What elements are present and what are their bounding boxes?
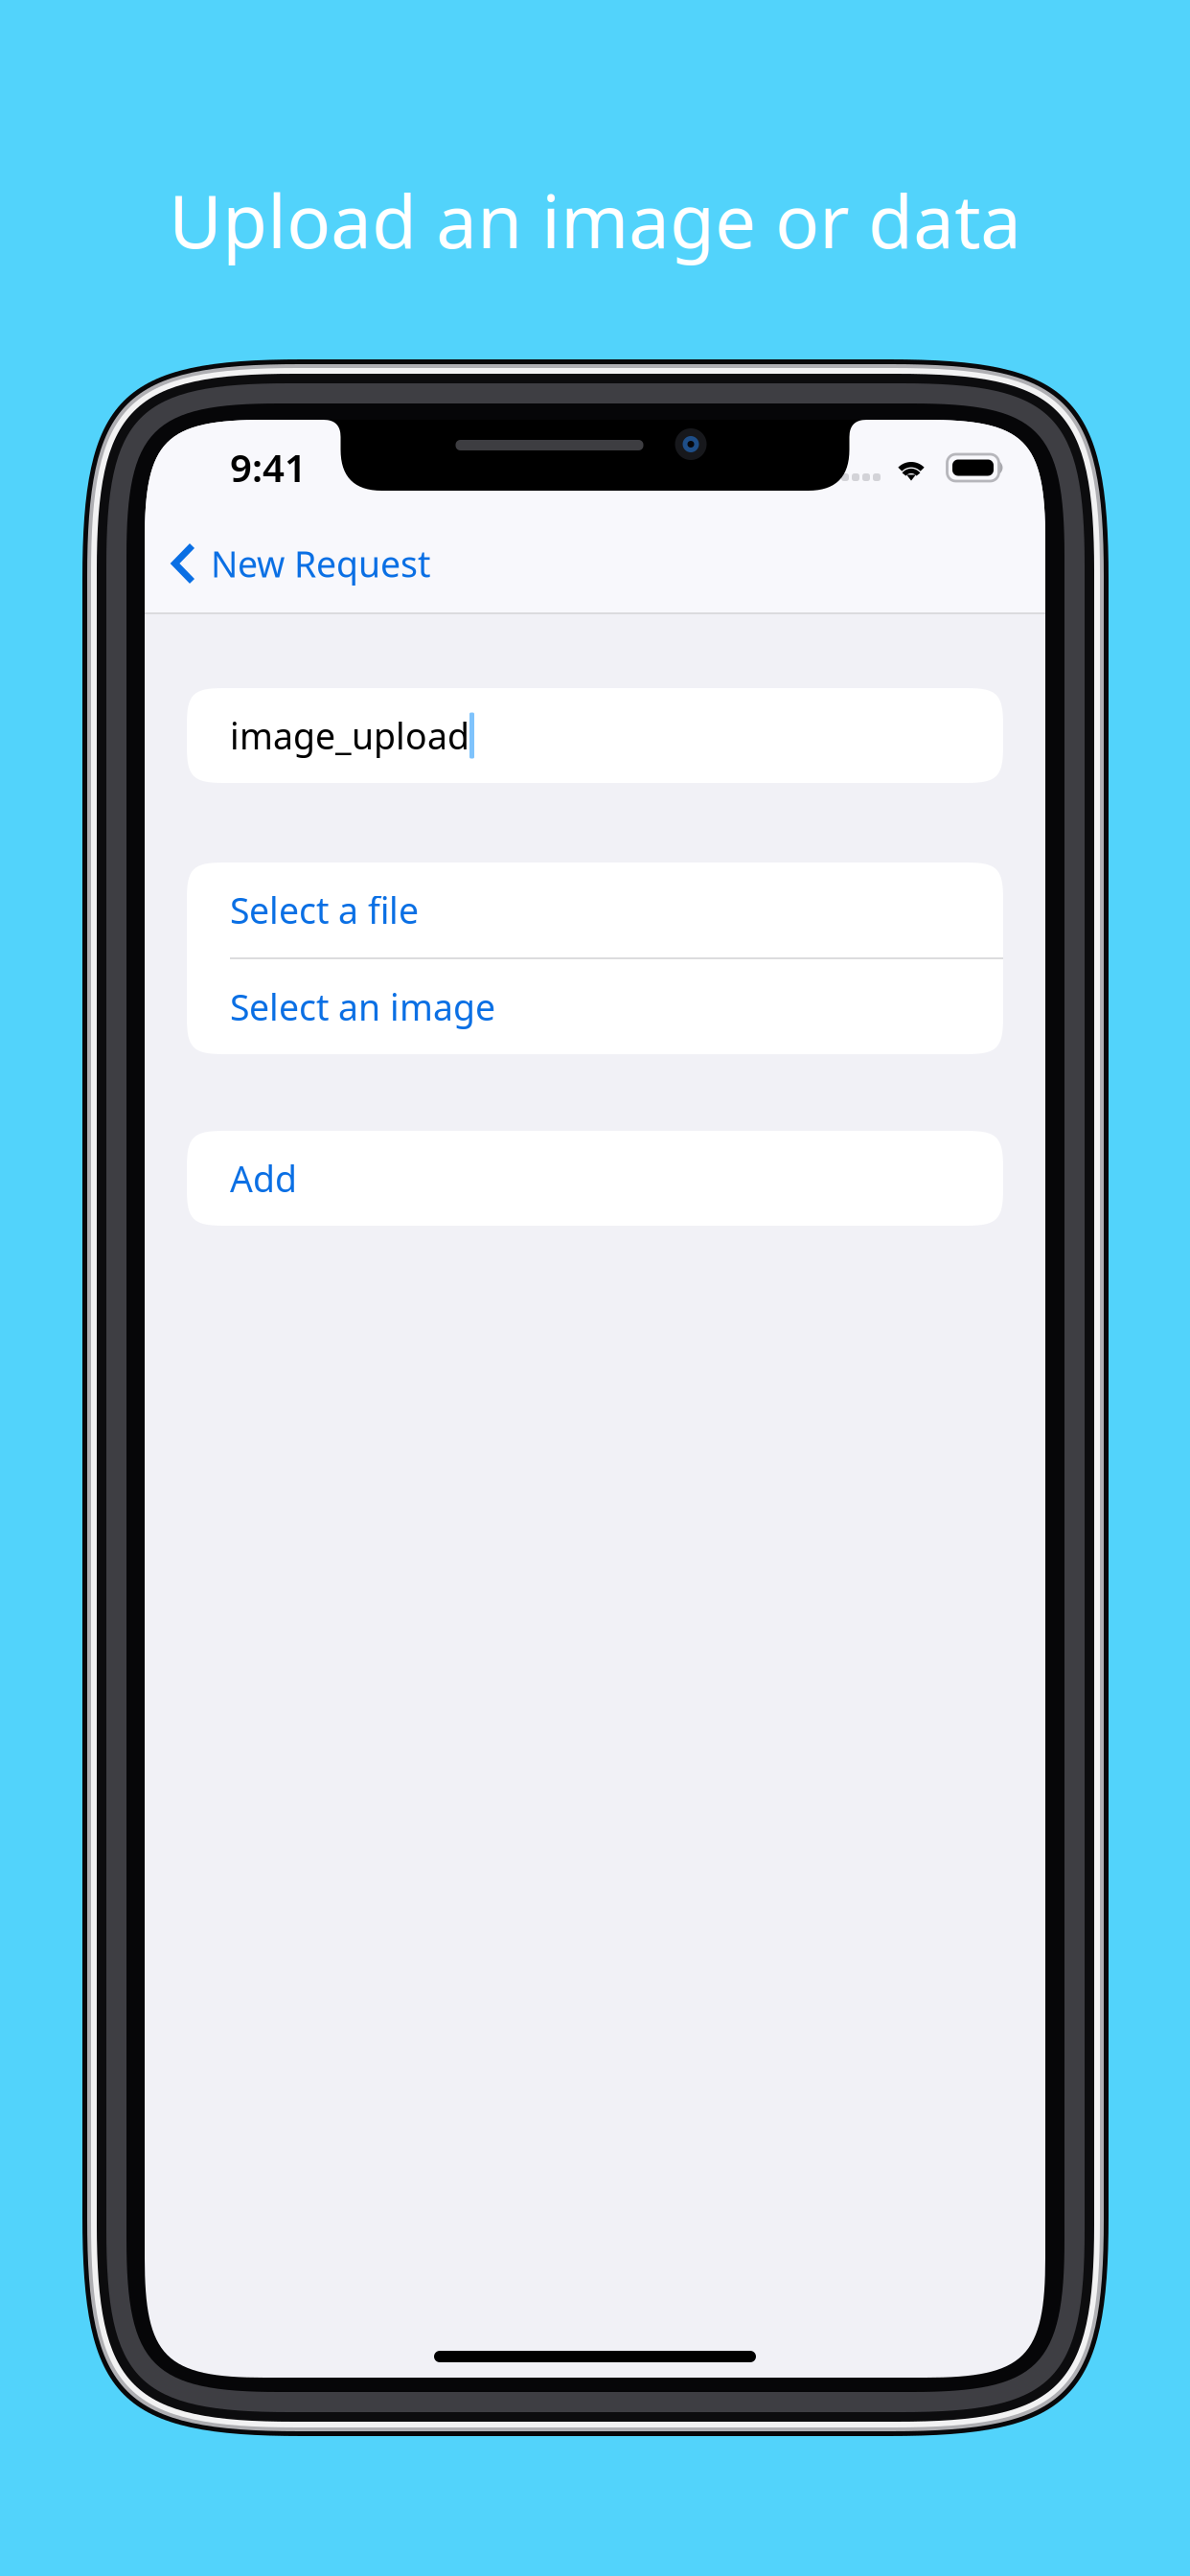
- staticText: New Request: [211, 540, 430, 587]
- button[interactable]: Select a file: [187, 862, 1003, 957]
- staticText: Upload an image or data: [169, 172, 1021, 268]
- button[interactable]: Add: [187, 1131, 1003, 1226]
- button[interactable]: Select an image: [187, 959, 1003, 1054]
- staticText: Select an image: [230, 983, 495, 1030]
- staticText: Select a file: [230, 886, 419, 934]
- staticText: image_upload: [230, 712, 469, 759]
- button[interactable]: Back to New Request: [145, 528, 1045, 599]
- staticText: Add: [230, 1155, 297, 1202]
- staticText: 9:41: [230, 442, 307, 493]
